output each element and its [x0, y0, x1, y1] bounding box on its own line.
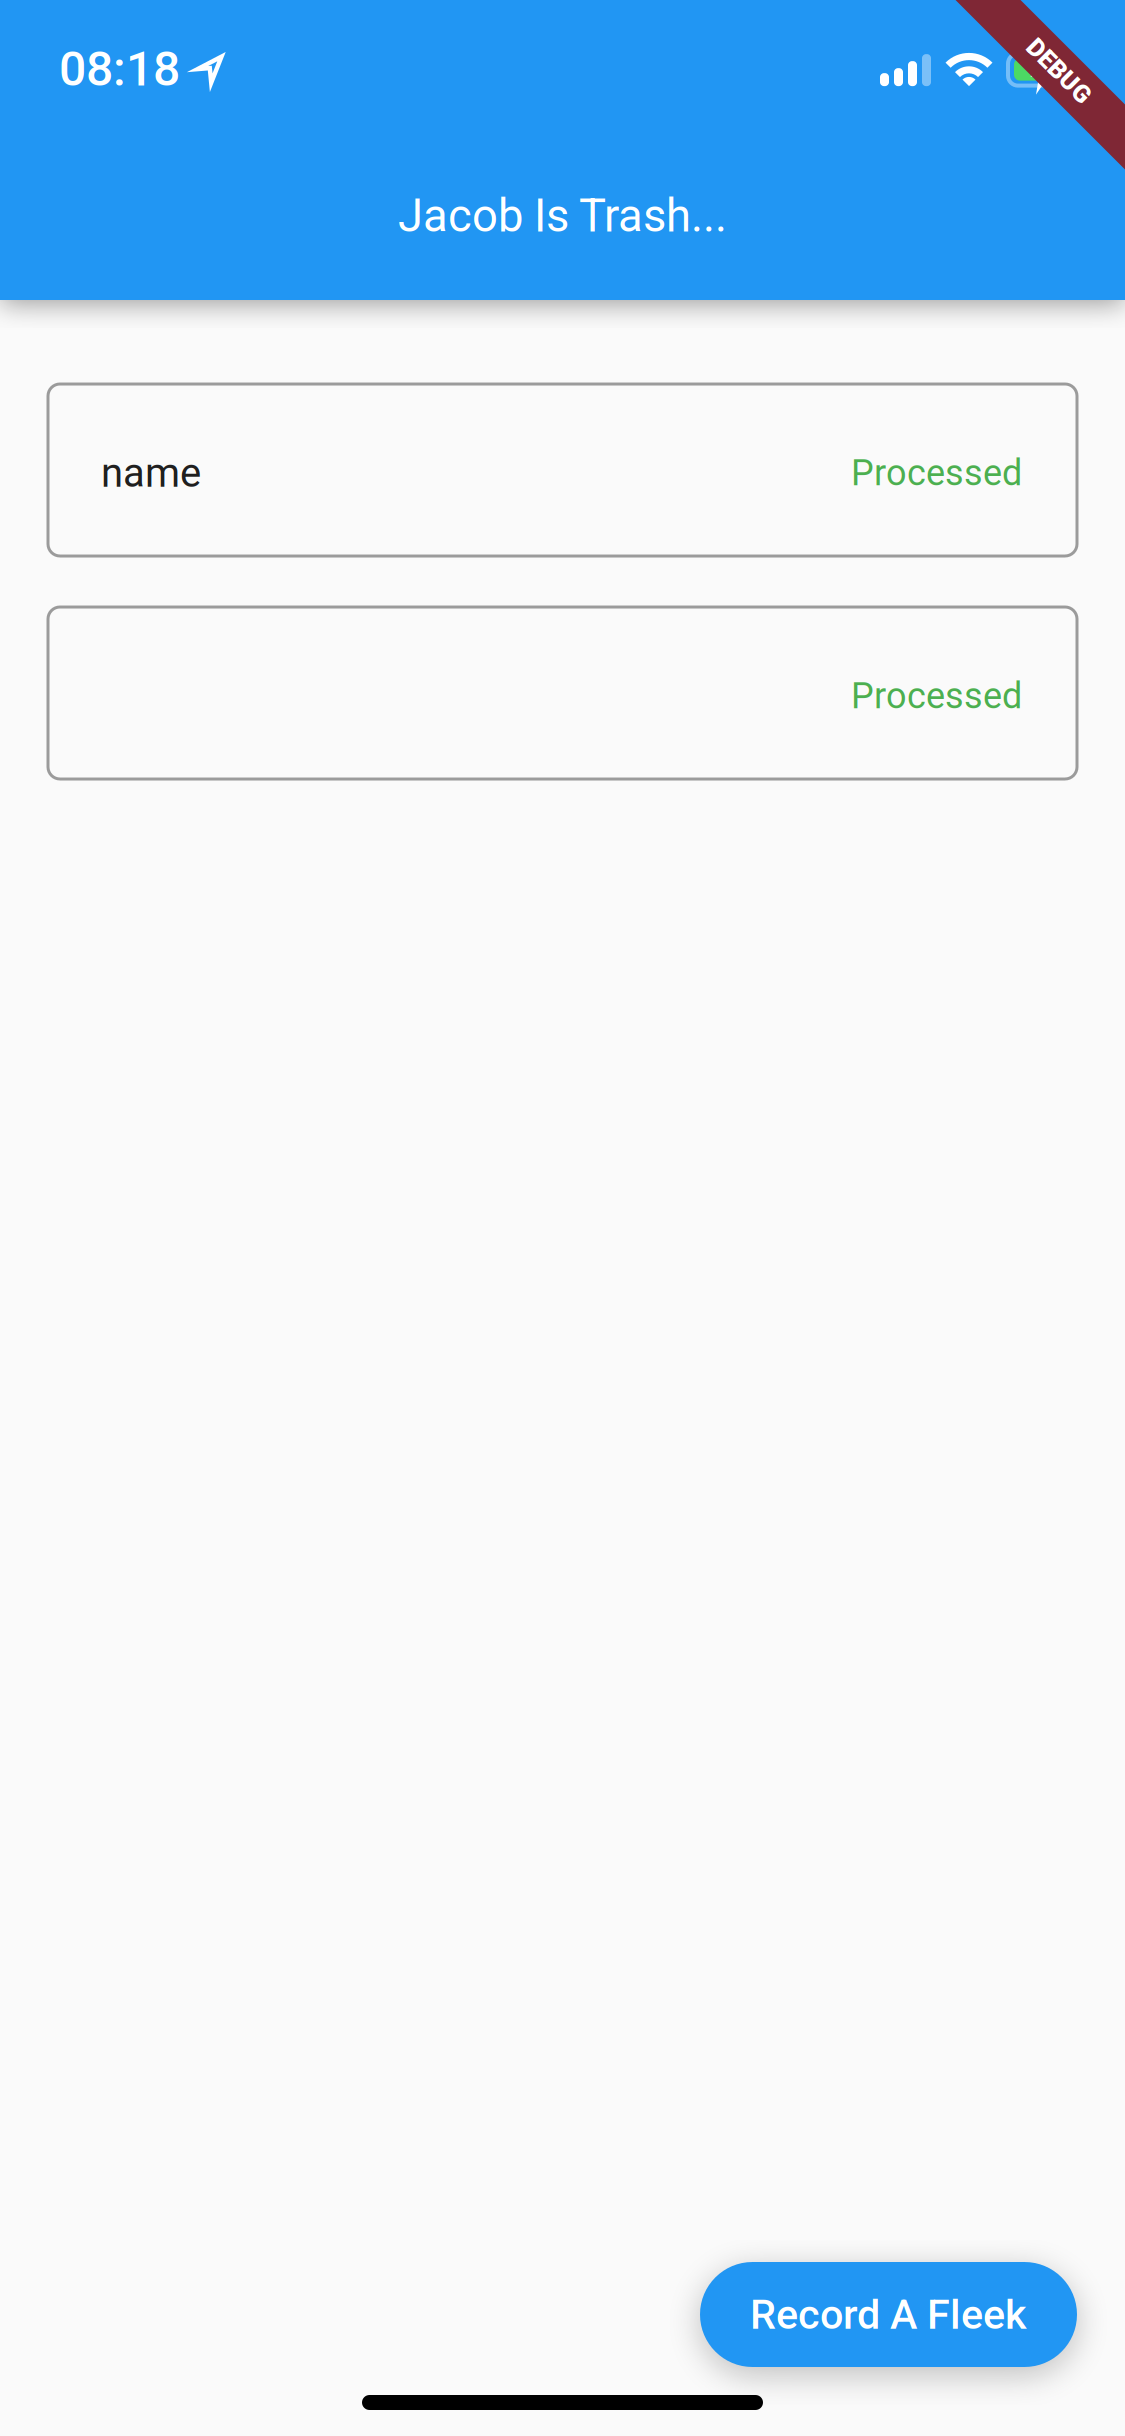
staticText: DEBUG — [1019, 56, 1099, 86]
staticText: Jacob Is Trash... — [398, 189, 727, 242]
staticText: 08:18 — [59, 41, 180, 97]
staticText: Record A Fleek — [750, 2290, 1027, 2339]
staticText: name — [101, 450, 201, 496]
staticText: Processed — [851, 452, 1022, 494]
button[interactable]: Processed — [0, 607, 1125, 779]
button[interactable]: Record A Fleek — [700, 2262, 1077, 2367]
button[interactable]: name — [0, 384, 1125, 556]
staticText: Processed — [851, 675, 1022, 717]
